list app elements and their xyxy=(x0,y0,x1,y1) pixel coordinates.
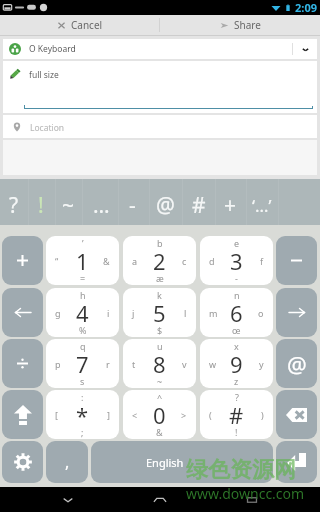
button[interactable]: right xyxy=(276,288,317,337)
button[interactable]: 1 xyxy=(46,236,119,285)
button[interactable]: backspace xyxy=(276,390,317,439)
button[interactable]: # xyxy=(184,182,214,228)
staticText: $ xyxy=(157,324,163,336)
staticText: [ xyxy=(55,409,58,421)
button[interactable]: 8 xyxy=(123,339,196,388)
staticText: œ xyxy=(232,324,241,336)
staticText: 5 xyxy=(153,298,166,328)
staticText: 绿色资源网 xyxy=(186,456,296,484)
staticText: q xyxy=(80,340,86,352)
staticText: 2 xyxy=(153,246,166,276)
button[interactable]: * xyxy=(46,390,119,439)
button[interactable]: ~ xyxy=(53,182,83,228)
button[interactable]: 9 xyxy=(200,339,273,388)
staticText: y xyxy=(259,358,264,370)
staticText: g xyxy=(55,307,61,319)
staticText: v xyxy=(182,358,187,370)
staticText: @ xyxy=(156,191,175,220)
staticText: # xyxy=(229,400,244,430)
button[interactable]: ! xyxy=(26,182,56,228)
staticText: x xyxy=(234,340,239,352)
button[interactable]: Settings xyxy=(2,441,43,483)
staticText: 6 xyxy=(230,298,243,328)
button[interactable]: , xyxy=(46,441,88,483)
staticText: i xyxy=(107,307,110,319)
staticText: # xyxy=(192,191,206,220)
button[interactable]: # xyxy=(200,390,273,439)
staticText: p xyxy=(55,358,61,370)
staticText: ! xyxy=(38,191,44,220)
button[interactable]: … xyxy=(86,182,116,228)
button[interactable]: 6 xyxy=(200,288,273,337)
staticText: ] xyxy=(107,409,110,421)
staticText: = xyxy=(80,272,86,284)
staticText: 9 xyxy=(230,349,243,379)
button[interactable]: 5 xyxy=(123,288,196,337)
button[interactable]: @ xyxy=(276,339,317,388)
staticText: f xyxy=(260,255,264,267)
staticText: ( xyxy=(209,409,212,421)
button[interactable]: left xyxy=(2,288,43,337)
button[interactable]: - xyxy=(117,182,147,228)
staticText: ) xyxy=(261,409,264,421)
button[interactable]: Home xyxy=(136,487,184,512)
staticText: ~ xyxy=(157,375,163,387)
button[interactable]: + xyxy=(215,182,245,228)
button[interactable]: Share xyxy=(160,15,320,35)
staticText: - xyxy=(235,272,238,284)
staticText: 1 xyxy=(76,246,89,276)
staticText: o xyxy=(258,307,264,319)
button[interactable]: Cancel xyxy=(0,15,159,35)
button[interactable]: ? xyxy=(0,182,29,228)
staticText: full size xyxy=(29,69,59,81)
button[interactable]: English xyxy=(91,441,273,483)
staticText: Share xyxy=(234,18,261,32)
staticText: ? xyxy=(9,191,19,220)
staticText: ^ xyxy=(157,391,163,403)
staticText: www.downcc.com xyxy=(186,484,305,503)
button[interactable]: divide xyxy=(2,339,43,388)
staticText: & xyxy=(156,426,163,438)
button[interactable]: minus xyxy=(276,236,317,285)
button[interactable]: O Keyboard xyxy=(3,39,317,59)
staticText: 2:09 xyxy=(295,0,317,15)
staticText: > xyxy=(181,409,187,421)
button[interactable]: @ xyxy=(150,182,180,228)
button[interactable]: plus xyxy=(2,236,43,285)
button[interactable]: Recent apps xyxy=(228,487,276,512)
button[interactable]: Location xyxy=(3,115,317,138)
staticText: & xyxy=(103,255,110,267)
button[interactable]: 0 xyxy=(123,390,196,439)
staticText: % xyxy=(79,324,87,336)
button[interactable]: Enter xyxy=(276,441,317,483)
staticText: 3 xyxy=(230,246,243,276)
button[interactable]: shift xyxy=(2,390,43,439)
button[interactable]: 4 xyxy=(46,288,119,337)
staticText: ? xyxy=(235,391,239,403)
staticText: m xyxy=(209,307,218,319)
staticText: ‘…’ xyxy=(252,194,272,217)
button[interactable]: 2 xyxy=(123,236,196,285)
staticText: r xyxy=(106,358,110,370)
button[interactable]: 7 xyxy=(46,339,119,388)
staticText: k xyxy=(157,289,162,301)
staticText: Cancel xyxy=(71,18,103,32)
button[interactable]: Hide keyboard xyxy=(44,487,92,512)
staticText: : xyxy=(81,391,84,403)
button[interactable]: 3 xyxy=(200,236,273,285)
staticText: u xyxy=(157,340,163,352)
staticText: c xyxy=(182,255,187,267)
staticText: @ xyxy=(287,349,307,379)
staticText: Location xyxy=(30,122,65,134)
button[interactable]: ‘…’ xyxy=(247,182,277,228)
staticText: … xyxy=(93,191,110,220)
button[interactable]: Select account xyxy=(293,39,317,59)
staticText: w xyxy=(209,358,217,370)
staticText: ’ xyxy=(82,237,84,249)
staticText: 0 xyxy=(153,400,166,430)
staticText: z xyxy=(234,375,239,387)
staticText: + xyxy=(224,191,237,220)
staticText: , xyxy=(65,451,70,473)
staticText: ~ xyxy=(62,191,75,220)
staticText: t xyxy=(132,358,136,370)
